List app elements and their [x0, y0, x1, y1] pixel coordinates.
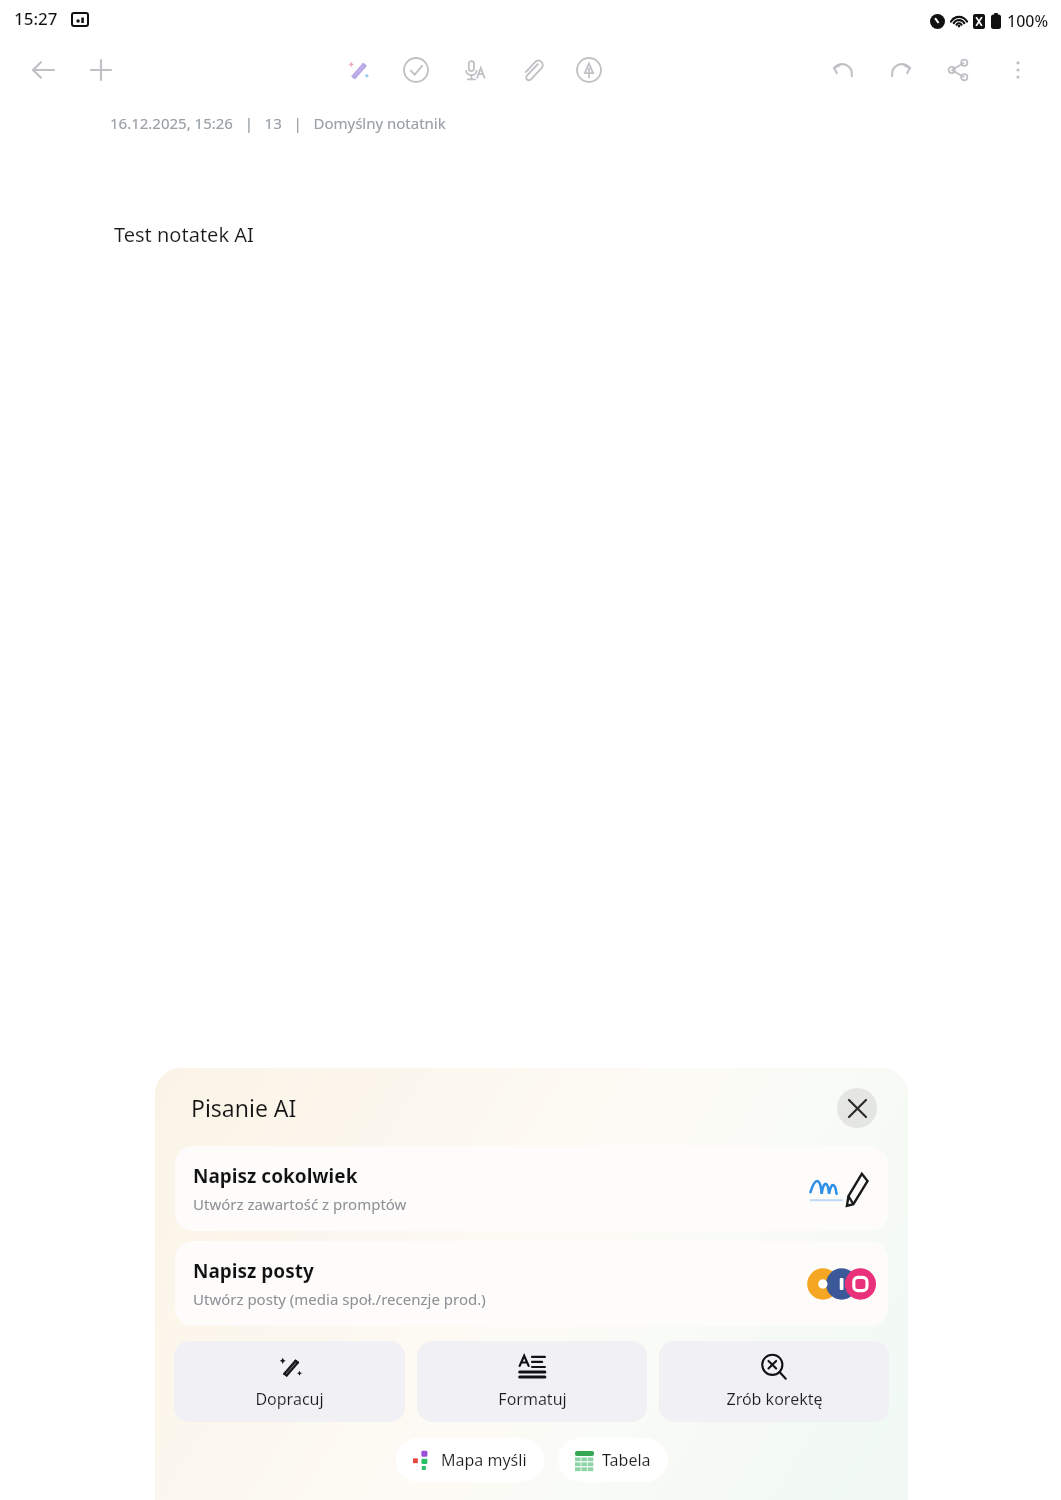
staticText: 100% [1007, 10, 1049, 32]
button[interactable]: AI writing [335, 47, 381, 93]
button[interactable]: Napisz posty [175, 1241, 888, 1326]
staticText: Formatuj [498, 1388, 567, 1410]
staticText: Mapa myśli [441, 1449, 527, 1471]
button[interactable]: Share [935, 47, 981, 93]
staticText: Napisz posty [193, 1258, 314, 1284]
button[interactable]: Attach [509, 47, 555, 93]
button[interactable]: Close [837, 1088, 877, 1128]
staticText: Test notatek AI [114, 221, 254, 248]
button[interactable]: Dopracuj [174, 1341, 405, 1422]
button[interactable]: Back [20, 47, 66, 93]
button[interactable]: Zrób korektę [659, 1341, 889, 1422]
button[interactable]: Checklist [393, 47, 439, 93]
staticText: 16.12.2025, 15:26 | 13 | Domyślny notatn… [110, 113, 446, 133]
staticText: Tabela [602, 1449, 651, 1471]
button[interactable]: Add [78, 47, 124, 93]
staticText: Napisz cokolwiek [193, 1163, 358, 1189]
staticText: Utwórz zawartość z promptów [193, 1194, 407, 1214]
button[interactable]: More options [995, 47, 1041, 93]
button[interactable]: Redo [878, 47, 924, 93]
staticText: 15:27 [14, 7, 58, 30]
button[interactable]: Napisz cokolwiek [175, 1146, 888, 1231]
button[interactable]: Voice transcription [451, 47, 497, 93]
button[interactable]: Pen [566, 47, 612, 93]
staticText: Utwórz posty (media społ./recenzje prod.… [193, 1289, 486, 1309]
staticText: Zrób korektę [726, 1388, 823, 1410]
staticText: Pisanie AI [191, 1092, 297, 1123]
button[interactable]: Undo [820, 47, 866, 93]
button[interactable]: Mapa myśli [396, 1438, 544, 1482]
button[interactable]: Formatuj [417, 1341, 647, 1422]
button[interactable]: Tabela [558, 1438, 668, 1482]
staticText: Dopracuj [255, 1388, 324, 1410]
